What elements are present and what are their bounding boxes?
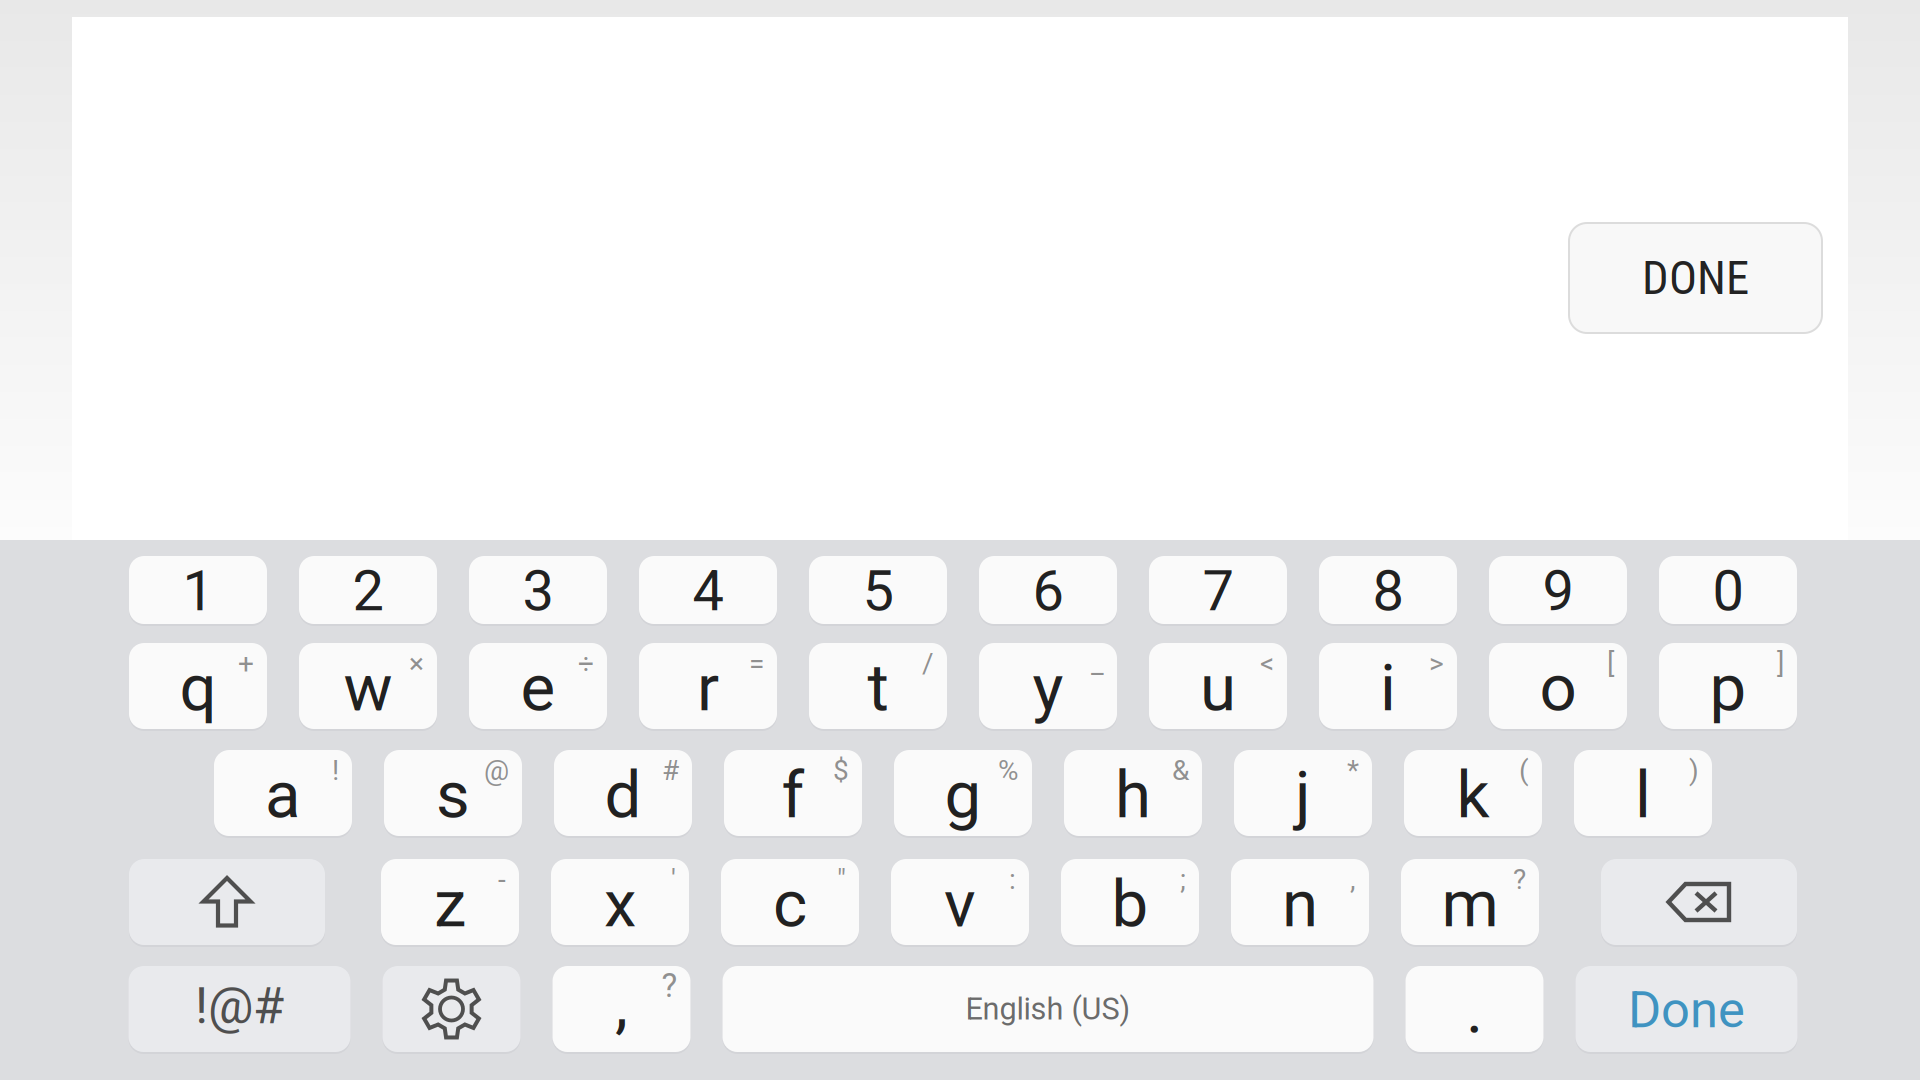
staticText: n xyxy=(1282,866,1318,942)
staticText: English (US) xyxy=(965,991,1130,1027)
button[interactable]: $ xyxy=(724,750,862,836)
staticText: & xyxy=(1172,754,1189,787)
staticText: u xyxy=(1200,650,1236,726)
button[interactable]: 8 xyxy=(1319,556,1457,624)
button[interactable]: ; xyxy=(1061,859,1199,945)
button[interactable]: 2 xyxy=(299,556,437,624)
staticText: v xyxy=(944,866,976,942)
staticText: l xyxy=(1635,757,1651,833)
button[interactable]: ! xyxy=(214,750,352,836)
button[interactable]: ? xyxy=(1401,859,1539,945)
button[interactable]: 3 xyxy=(469,556,607,624)
button[interactable]: @ xyxy=(384,750,522,836)
button[interactable]: 6 xyxy=(979,556,1117,624)
staticText: ) xyxy=(1689,754,1699,787)
staticText: g xyxy=(944,757,981,833)
staticText: b xyxy=(1111,866,1148,942)
staticText: !@# xyxy=(195,976,284,1036)
staticText: j xyxy=(1295,757,1311,833)
staticText: % xyxy=(998,754,1019,787)
staticText: ÷ xyxy=(578,647,594,680)
button[interactable]: _ xyxy=(979,643,1117,729)
button[interactable]: ( xyxy=(1404,750,1542,836)
button[interactable]: . xyxy=(1405,966,1543,1052)
staticText: ? xyxy=(1513,863,1526,896)
button[interactable]: ? xyxy=(552,966,690,1052)
staticText: ! xyxy=(332,754,339,787)
button[interactable]: × xyxy=(299,643,437,729)
staticText: q xyxy=(179,650,216,726)
button[interactable]: English (US) xyxy=(722,966,1373,1052)
button[interactable]: !@# xyxy=(128,966,350,1052)
button[interactable]: 1 xyxy=(129,556,267,624)
staticText: _ xyxy=(1091,647,1104,680)
staticText: 8 xyxy=(1372,558,1403,624)
button[interactable]: ] xyxy=(1659,643,1797,729)
button[interactable]: Shift xyxy=(129,859,325,945)
staticText: k xyxy=(1456,757,1489,833)
staticText: s xyxy=(436,757,470,833)
staticText: 6 xyxy=(1032,558,1063,624)
staticText: f xyxy=(781,757,804,833)
staticText: = xyxy=(749,647,764,680)
button[interactable]: Done xyxy=(1575,966,1797,1052)
staticText: / xyxy=(922,647,934,680)
button[interactable]: * xyxy=(1234,750,1372,836)
staticText: 3 xyxy=(522,558,553,624)
button[interactable]: [ xyxy=(1489,643,1627,729)
button[interactable]: 9 xyxy=(1489,556,1627,624)
staticText: DONE xyxy=(1642,251,1749,305)
staticText: [ xyxy=(1607,647,1614,680)
staticText: e xyxy=(520,650,555,726)
button[interactable]: ÷ xyxy=(469,643,607,729)
staticText: 2 xyxy=(352,558,383,624)
button[interactable]: : xyxy=(891,859,1029,945)
button[interactable]: Keyboard settings xyxy=(382,966,520,1052)
staticText: c xyxy=(773,866,807,942)
button[interactable]: " xyxy=(721,859,859,945)
button[interactable]: 7 xyxy=(1149,556,1287,624)
staticText: a xyxy=(265,757,301,833)
button[interactable]: ) xyxy=(1574,750,1712,836)
staticText: * xyxy=(1347,754,1359,787)
button[interactable]: # xyxy=(554,750,692,836)
button[interactable]: , xyxy=(1231,859,1369,945)
staticText: 1 xyxy=(182,558,213,624)
staticText: m xyxy=(1441,866,1498,942)
staticText: w xyxy=(343,650,392,726)
staticText: , xyxy=(1350,863,1356,896)
staticText: , xyxy=(615,966,628,1042)
staticText: > xyxy=(1429,647,1444,680)
button[interactable]: % xyxy=(894,750,1032,836)
staticText: × xyxy=(409,647,424,680)
staticText: p xyxy=(1709,650,1746,726)
staticText: @ xyxy=(484,754,509,787)
staticText: ; xyxy=(1180,863,1186,896)
button[interactable]: > xyxy=(1319,643,1457,729)
button[interactable]: = xyxy=(639,643,777,729)
button[interactable]: DONE xyxy=(1569,223,1822,333)
staticText: 0 xyxy=(1712,558,1743,624)
button[interactable]: < xyxy=(1149,643,1287,729)
button[interactable]: - xyxy=(381,859,519,945)
staticText: t xyxy=(867,650,888,726)
staticText: " xyxy=(837,863,846,896)
button[interactable]: Delete xyxy=(1601,859,1797,945)
button[interactable]: / xyxy=(809,643,947,729)
button[interactable]: & xyxy=(1064,750,1202,836)
button[interactable]: 5 xyxy=(809,556,947,624)
staticText: z xyxy=(434,866,466,942)
staticText: 5 xyxy=(862,558,893,624)
button[interactable]: 4 xyxy=(639,556,777,624)
button[interactable]: 0 xyxy=(1659,556,1797,624)
staticText: x xyxy=(604,866,636,942)
staticText: # xyxy=(662,754,679,787)
staticText: r xyxy=(697,650,719,726)
staticText: y xyxy=(1032,650,1063,726)
staticText: ? xyxy=(661,966,677,1005)
staticText: ( xyxy=(1519,754,1529,787)
staticText: $ xyxy=(833,754,849,787)
button[interactable]: + xyxy=(129,643,267,729)
button[interactable]: ' xyxy=(551,859,689,945)
staticText: : xyxy=(1009,863,1016,896)
